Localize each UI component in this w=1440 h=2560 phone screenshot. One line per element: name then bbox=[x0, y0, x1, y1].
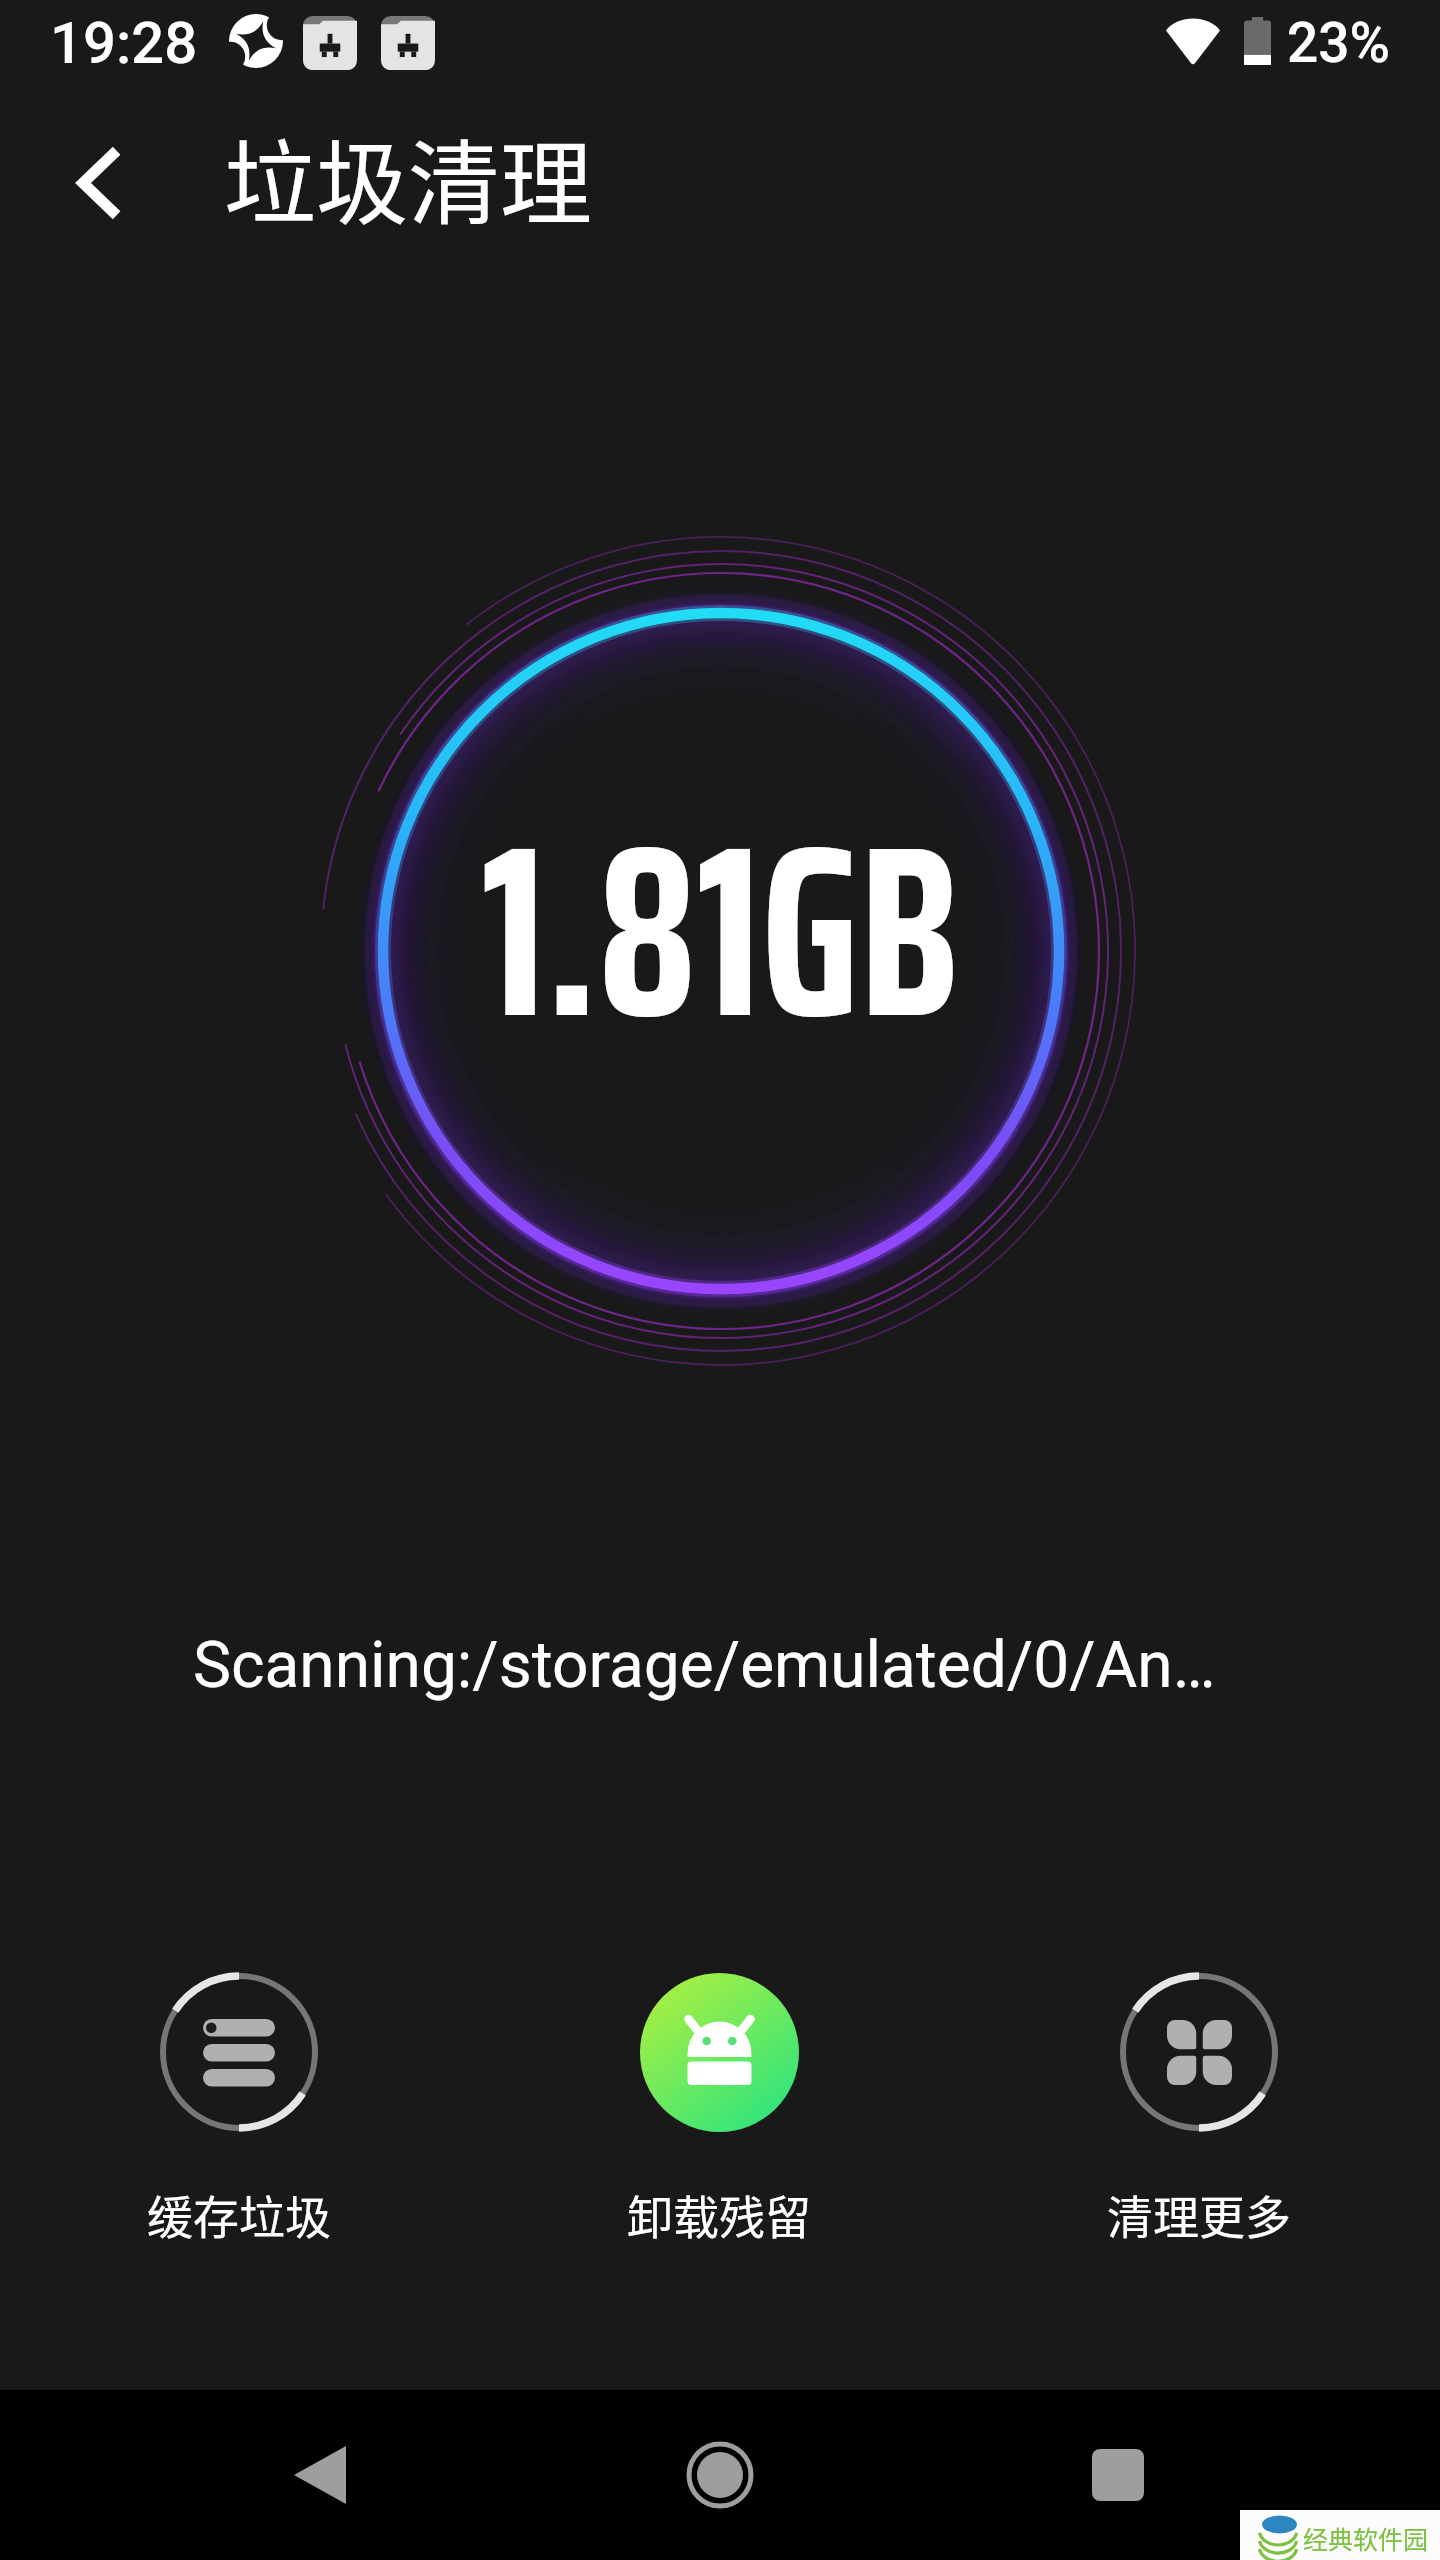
button[interactable]: Back bbox=[240, 2390, 400, 2560]
button[interactable]: 卸载残留 bbox=[619, 1952, 819, 2236]
staticText: 卸载残留 bbox=[627, 2181, 811, 2248]
staticText: 19:28 bbox=[50, 9, 198, 77]
staticText: Scanning:/storage/emulated/0/An… bbox=[193, 1628, 1216, 1703]
button[interactable]: Recents bbox=[1038, 2390, 1198, 2560]
button[interactable]: Home bbox=[640, 2390, 800, 2560]
button[interactable]: Back bbox=[26, 100, 171, 265]
staticText: 垃圾清理 bbox=[224, 110, 593, 243]
staticText: 1.81GB bbox=[481, 740, 959, 1121]
staticText: 缓存垃圾 bbox=[147, 2181, 331, 2248]
button[interactable]: 缓存垃圾 bbox=[139, 1952, 339, 2236]
staticText: 23% bbox=[1287, 11, 1391, 75]
button[interactable]: 清理更多 bbox=[1099, 1952, 1299, 2236]
staticText: 经典软件园 bbox=[1303, 2520, 1429, 2556]
staticText: 清理更多 bbox=[1107, 2181, 1291, 2248]
